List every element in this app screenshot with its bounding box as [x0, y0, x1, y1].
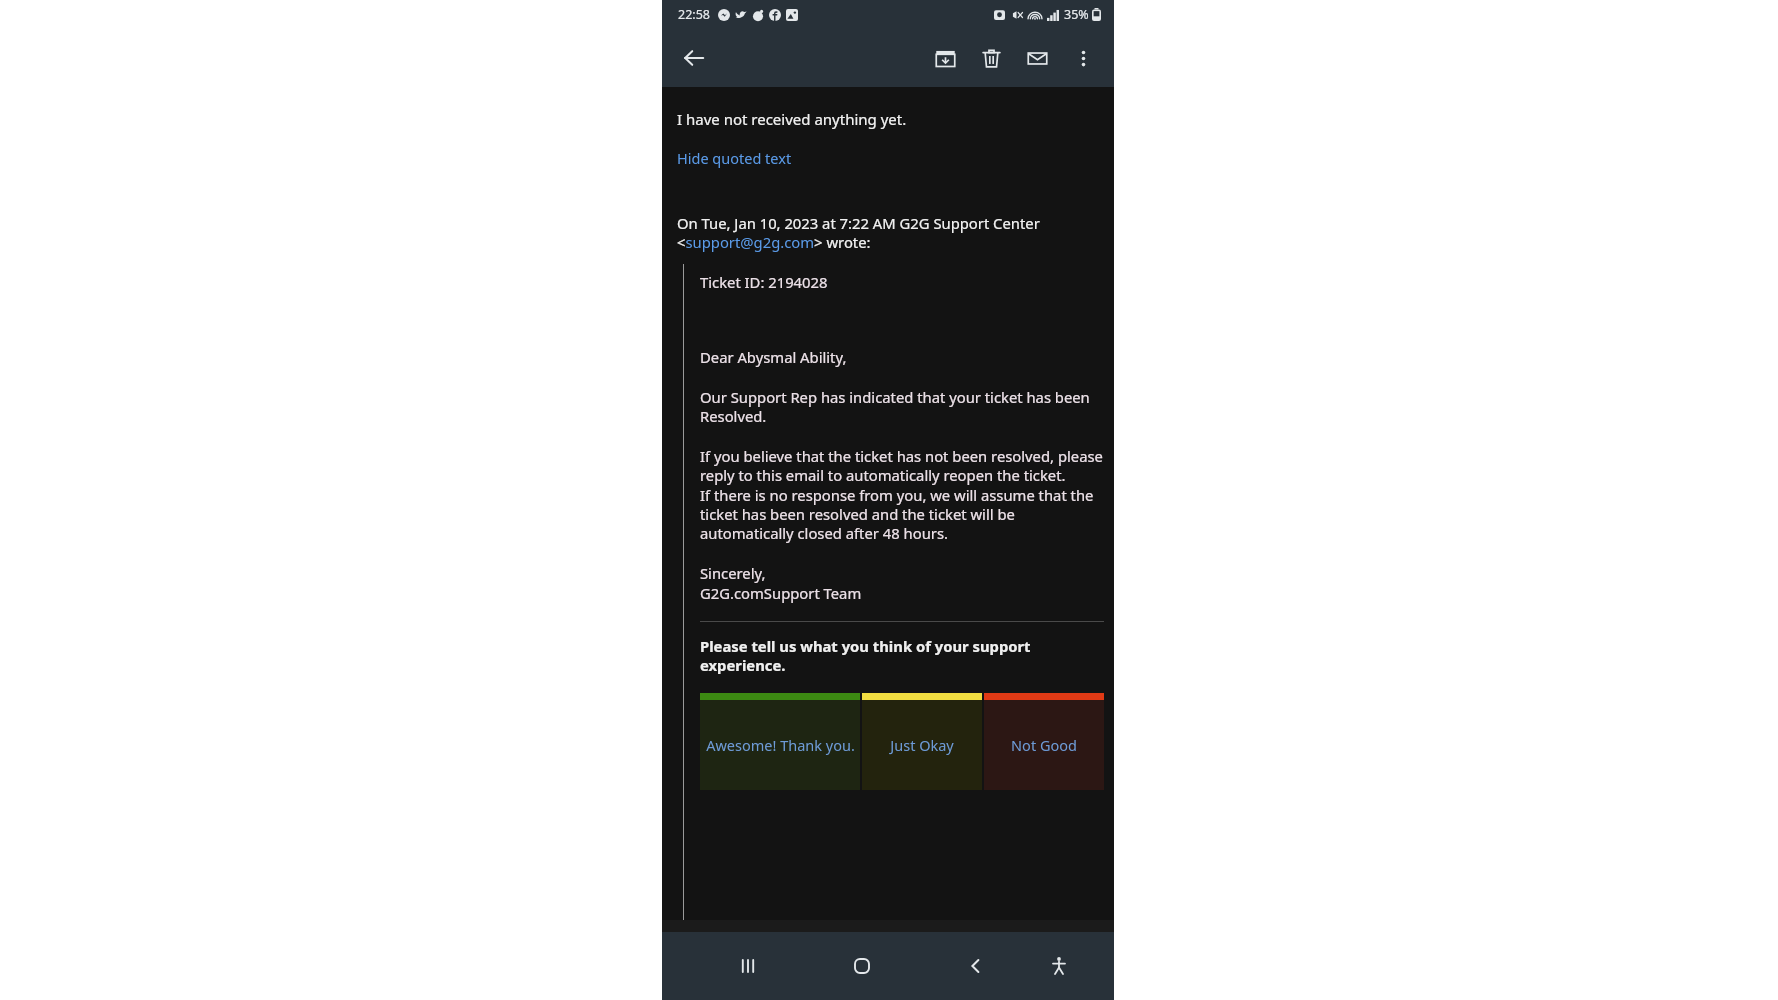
staticText: Not Good [1011, 735, 1077, 755]
staticText: Ticket ID: 2194028 [700, 272, 828, 292]
staticText: Hide quoted text [677, 148, 792, 168]
button[interactable]: Not Good [984, 693, 1104, 790]
button[interactable]: Hide quoted text [677, 148, 792, 168]
button[interactable]: Home [840, 944, 884, 988]
staticText: Just Okay [890, 735, 954, 755]
button[interactable]: More options [1060, 35, 1106, 81]
button[interactable]: Archive [922, 35, 968, 81]
button[interactable]: Just Okay [862, 693, 982, 790]
staticText: Sincerely, [700, 563, 766, 583]
staticText: Please tell us what you think of your su… [700, 636, 1104, 675]
staticText: If you believe that the ticket has not b… [700, 446, 1104, 485]
staticText: If there is no response from you, we wil… [700, 485, 1104, 543]
staticText: Our Support Rep has indicated that your … [700, 387, 1104, 426]
button[interactable]: Accessibility [1037, 944, 1081, 988]
staticText: Awesome! Thank you. [706, 735, 855, 755]
button[interactable]: Awesome! Thank you. [700, 693, 860, 790]
staticText: Dear Abysmal Ability, [700, 347, 847, 367]
staticText: G2G.comSupport Team [700, 583, 862, 603]
button[interactable]: Back [954, 944, 998, 988]
button[interactable]: Back [670, 34, 718, 82]
staticText: I have not received anything yet. [677, 109, 907, 129]
staticText: 22:58 [678, 6, 710, 23]
staticText: On Tue, Jan 10, 2023 at 7:22 AM G2G Supp… [677, 213, 1102, 252]
staticText: 35% [1064, 6, 1089, 23]
button[interactable]: Recents [726, 944, 770, 988]
button[interactable]: Delete [968, 35, 1014, 81]
button[interactable]: Mark unread [1014, 35, 1060, 81]
